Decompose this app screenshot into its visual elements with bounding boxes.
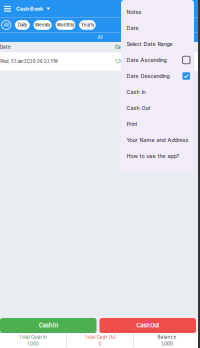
- staticText: All: [97, 34, 102, 40]
- staticText: Balance: [157, 334, 176, 340]
- staticText: Wed, 07 Jan 2026 06:22 PM: [0, 59, 58, 64]
- button[interactable]: Notes: [121, 4, 194, 20]
- button[interactable]: Cash Out: [121, 100, 194, 116]
- button[interactable]: Date Ascending: [121, 52, 194, 68]
- button[interactable]: Print: [121, 116, 194, 132]
- button[interactable]: Cash Book: [16, 0, 50, 17]
- button[interactable]: Date Descending: [121, 68, 194, 84]
- button[interactable]: Monthly: [56, 21, 75, 29]
- staticText: Cash Out: [126, 105, 150, 111]
- staticText: Select Date Range: [126, 41, 172, 47]
- staticText: Daily: [18, 22, 27, 28]
- staticText: 1,000: [161, 341, 173, 347]
- staticText: How to use the app?: [126, 153, 179, 159]
- button[interactable]: Weekly: [34, 21, 51, 29]
- staticText: Yearly: [81, 22, 94, 28]
- staticText: All: [4, 22, 9, 28]
- staticText: Your Name and Address: [126, 137, 188, 143]
- staticText: Date Ascending: [126, 57, 166, 63]
- button[interactable]: Your Name and Address: [121, 132, 194, 148]
- button[interactable]: Daily: [15, 21, 29, 29]
- staticText: Date: [0, 45, 11, 50]
- staticText: Notes: [126, 9, 141, 15]
- button[interactable]: Cash In: [0, 318, 96, 333]
- button[interactable]: Cash Out: [99, 318, 196, 333]
- button[interactable]: Menu: [0, 0, 16, 17]
- button[interactable]: How to use the app?: [121, 148, 194, 164]
- button[interactable]: Date: [121, 20, 194, 36]
- staticText: Date Descending: [126, 73, 169, 79]
- staticText: 0: [98, 341, 101, 347]
- staticText: Date: [126, 25, 138, 31]
- button[interactable]: All: [2, 21, 11, 29]
- staticText: Cash Book: [16, 5, 43, 12]
- staticText: Total Cash In: [19, 334, 47, 340]
- staticText: Weekly: [35, 22, 50, 28]
- staticText: Cash In: [39, 322, 58, 329]
- staticText: Total Cash Out: [84, 334, 115, 340]
- staticText: Cash In: [115, 45, 131, 50]
- button[interactable]: Cash In: [121, 84, 194, 100]
- staticText: Cash In: [126, 89, 145, 95]
- staticText: Monthly: [57, 22, 74, 28]
- staticText: 1,000: [115, 59, 127, 64]
- staticText: Print: [126, 121, 137, 127]
- button[interactable]: Yearly: [80, 21, 95, 29]
- staticText: 1,000: [27, 341, 39, 347]
- button[interactable]: Select Date Range: [121, 36, 194, 52]
- staticText: Cash Out: [136, 322, 159, 329]
